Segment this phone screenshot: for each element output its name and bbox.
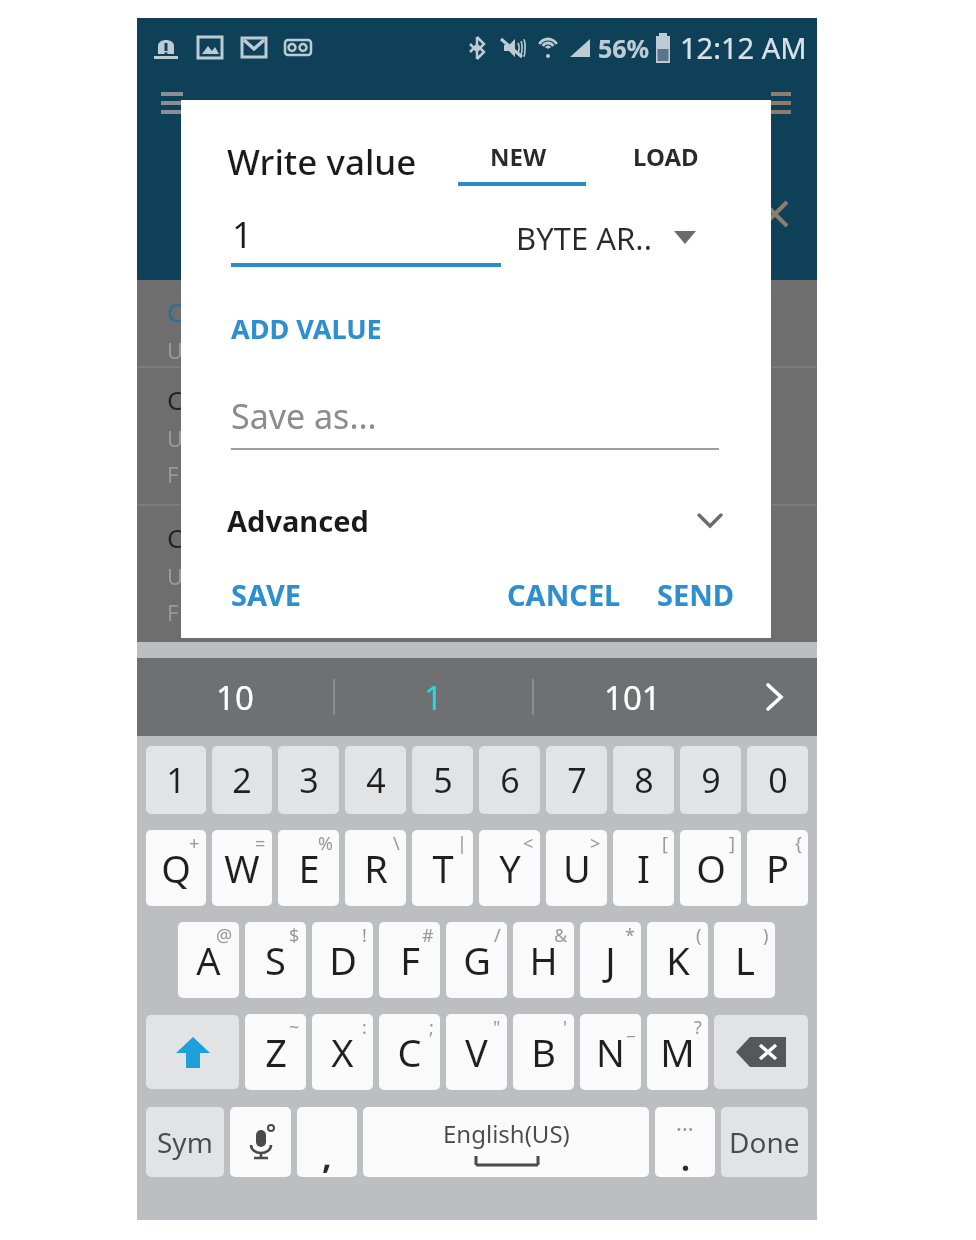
- button[interactable]: L: [714, 922, 775, 998]
- button[interactable]: 8: [613, 746, 674, 814]
- staticText: R: [364, 842, 388, 894]
- staticText: Q: [161, 842, 191, 894]
- staticText: &: [554, 923, 568, 948]
- button[interactable]: Backspace: [714, 1015, 808, 1089]
- staticText: A: [196, 934, 221, 986]
- button[interactable]: W: [212, 830, 272, 906]
- staticText: ?: [694, 1015, 702, 1040]
- button[interactable]: V: [446, 1014, 507, 1090]
- button[interactable]: I: [613, 830, 674, 906]
- button[interactable]: 0: [747, 746, 808, 814]
- button[interactable]: BYTE AR..: [516, 212, 696, 264]
- button[interactable]: More suggestions: [731, 658, 817, 736]
- button[interactable]: A: [178, 922, 239, 998]
- staticText: NEW: [490, 140, 547, 173]
- staticText: D: [329, 934, 357, 986]
- button[interactable]: O: [680, 830, 741, 906]
- button[interactable]: 1: [335, 658, 532, 736]
- button[interactable]: Q: [146, 830, 206, 906]
- staticText: #: [422, 923, 434, 948]
- button[interactable]: Voice input: [230, 1107, 291, 1177]
- staticText: (: [696, 923, 702, 948]
- staticText: H: [529, 934, 558, 986]
- button[interactable]: LOAD: [601, 128, 731, 188]
- button[interactable]: D: [312, 922, 373, 998]
- staticText: =: [255, 831, 266, 856]
- staticText: /: [494, 923, 501, 948]
- button[interactable]: English(US): [363, 1107, 649, 1177]
- button[interactable]: Z: [245, 1014, 306, 1090]
- staticText: G: [463, 934, 491, 986]
- button[interactable]: 101: [534, 658, 731, 736]
- button[interactable]: 6: [479, 746, 540, 814]
- staticText: C: [167, 294, 184, 329]
- button[interactable]: 10: [137, 658, 333, 736]
- button[interactable]: ...: [655, 1107, 715, 1177]
- staticText: 5: [433, 757, 453, 803]
- button[interactable]: 4: [345, 746, 406, 814]
- button[interactable]: C: [379, 1014, 440, 1090]
- button[interactable]: ADD VALUE: [231, 310, 382, 347]
- button[interactable]: U: [546, 830, 607, 906]
- staticText: 1: [166, 757, 186, 803]
- button[interactable]: 7: [546, 746, 607, 814]
- button[interactable]: G: [446, 922, 507, 998]
- button[interactable]: Close: [755, 194, 795, 234]
- button[interactable]: N: [580, 1014, 641, 1090]
- button[interactable]: NEW: [453, 128, 583, 188]
- button[interactable]: B: [513, 1014, 574, 1090]
- button[interactable]: SEND: [657, 575, 735, 614]
- button[interactable]: R: [345, 830, 406, 906]
- button[interactable]: S: [245, 922, 306, 998]
- staticText: 9: [701, 757, 721, 803]
- staticText: F: [167, 597, 179, 627]
- staticText: >: [590, 831, 601, 856]
- button[interactable]: T: [412, 830, 473, 906]
- staticText: !: [362, 923, 367, 948]
- button[interactable]: 5: [412, 746, 473, 814]
- button[interactable]: Sym: [146, 1107, 224, 1177]
- button[interactable]: CANCEL: [507, 575, 621, 614]
- staticText: W: [224, 842, 260, 894]
- button[interactable]: H: [513, 922, 574, 998]
- button[interactable]: 9: [680, 746, 741, 814]
- staticText: \: [393, 831, 400, 856]
- button[interactable]: Y: [479, 830, 540, 906]
- staticText: L: [735, 934, 755, 986]
- staticText: U: [563, 842, 591, 894]
- button[interactable]: F: [379, 922, 440, 998]
- staticText: U: [167, 335, 184, 365]
- button[interactable]: Advanced: [227, 490, 725, 550]
- staticText: C: [397, 1026, 422, 1078]
- button[interactable]: E: [278, 830, 339, 906]
- staticText: SAVE: [231, 575, 301, 614]
- button[interactable]: Shift: [146, 1015, 239, 1089]
- staticText: P: [766, 842, 789, 894]
- button[interactable]: ,: [297, 1107, 357, 1177]
- button[interactable]: P: [747, 830, 808, 906]
- staticText: S: [265, 934, 286, 986]
- staticText: 3: [299, 757, 319, 803]
- button[interactable]: 2: [212, 746, 272, 814]
- button[interactable]: Menu: [151, 82, 195, 126]
- staticText: _: [627, 1015, 635, 1040]
- staticText: Advanced: [227, 501, 369, 540]
- staticText: 8: [634, 757, 654, 803]
- button[interactable]: J: [580, 922, 641, 998]
- staticText: ": [493, 1015, 501, 1040]
- staticText: Y: [499, 842, 521, 894]
- button[interactable]: X: [312, 1014, 373, 1090]
- button[interactable]: 1: [146, 746, 206, 814]
- staticText: 4: [366, 757, 386, 803]
- button[interactable]: SAVE: [231, 575, 301, 614]
- button[interactable]: More options: [759, 82, 803, 126]
- staticText: LOAD: [633, 140, 699, 173]
- button[interactable]: Done: [721, 1107, 808, 1177]
- staticText: 10: [216, 675, 254, 720]
- staticText: *: [625, 923, 635, 948]
- staticText: 1: [232, 210, 253, 259]
- staticText: Done: [729, 1123, 800, 1161]
- button[interactable]: 3: [278, 746, 339, 814]
- button[interactable]: M: [647, 1014, 708, 1090]
- button[interactable]: K: [647, 922, 708, 998]
